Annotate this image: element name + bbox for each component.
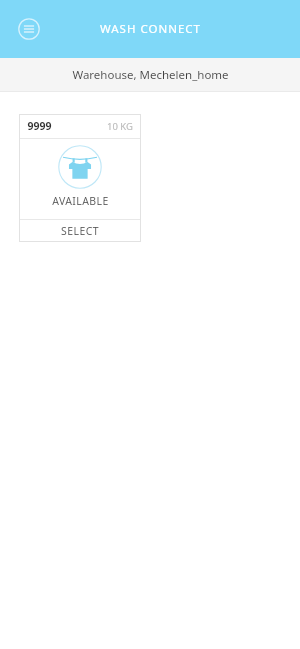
staticText: 10 KG bbox=[107, 120, 133, 133]
button[interactable]: AVAILABLE bbox=[19, 139, 141, 219]
staticText: WASH CONNECT bbox=[100, 21, 201, 37]
staticText: Warehouse, Mechelen_home bbox=[72, 67, 229, 83]
button[interactable]: 9999 bbox=[19, 114, 141, 138]
staticText: 9999 bbox=[27, 119, 52, 133]
staticText: SELECT bbox=[61, 224, 99, 238]
staticText: AVAILABLE bbox=[52, 194, 109, 208]
button[interactable]: SELECT bbox=[19, 220, 141, 242]
button[interactable]: Open navigation menu bbox=[14, 14, 44, 44]
